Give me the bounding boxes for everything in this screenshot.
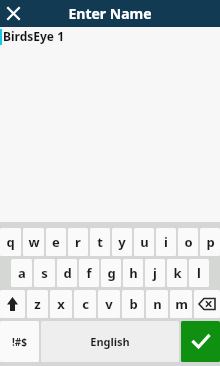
- staticText: w: [28, 233, 40, 251]
- staticText: a: [18, 264, 26, 282]
- staticText: p: [206, 233, 215, 251]
- button[interactable]: n: [146, 290, 168, 318]
- staticText: j: [153, 264, 157, 282]
- button[interactable]: p: [200, 228, 220, 256]
- staticText: k: [173, 264, 182, 282]
- button[interactable]: x: [50, 290, 72, 318]
- button[interactable]: l: [189, 259, 209, 287]
- button[interactable]: u: [134, 228, 154, 256]
- staticText: x: [57, 295, 65, 313]
- staticText: BirdsEye 1: [3, 28, 65, 44]
- button[interactable]: c: [74, 290, 96, 318]
- staticText: f: [86, 264, 92, 282]
- staticText: q: [6, 233, 15, 251]
- button[interactable]: Shift: [0, 290, 25, 318]
- button[interactable]: h: [123, 259, 143, 287]
- button[interactable]: m: [170, 290, 192, 318]
- button[interactable]: e: [46, 228, 66, 256]
- button[interactable]: Backspace: [194, 290, 220, 318]
- button[interactable]: English: [41, 321, 179, 362]
- button[interactable]: b: [122, 290, 144, 318]
- button[interactable]: g: [101, 259, 121, 287]
- button[interactable]: !#$: [0, 321, 39, 362]
- button[interactable]: y: [112, 228, 132, 256]
- button[interactable]: r: [68, 228, 88, 256]
- button[interactable]: v: [98, 290, 120, 318]
- button[interactable]: w: [23, 228, 44, 256]
- button[interactable]: j: [145, 259, 165, 287]
- button[interactable]: f: [79, 259, 99, 287]
- button[interactable]: a: [11, 259, 32, 287]
- staticText: u: [140, 233, 149, 251]
- button[interactable]: k: [167, 259, 187, 287]
- staticText: r: [75, 233, 81, 251]
- button[interactable]: q: [0, 228, 21, 256]
- button[interactable]: z: [27, 290, 48, 318]
- staticText: i: [164, 233, 168, 251]
- staticText: n: [153, 295, 162, 313]
- staticText: o: [184, 233, 193, 251]
- button[interactable]: BirdsEye 1: [0, 27, 220, 45]
- button[interactable]: s: [34, 259, 55, 287]
- button[interactable]: Enter: [181, 321, 220, 362]
- staticText: z: [34, 295, 41, 313]
- staticText: c: [82, 295, 89, 313]
- button[interactable]: t: [90, 228, 110, 256]
- staticText: d: [63, 264, 72, 282]
- button[interactable]: d: [57, 259, 77, 287]
- staticText: e: [52, 233, 60, 251]
- staticText: y: [118, 233, 126, 251]
- staticText: !#$: [12, 335, 27, 349]
- staticText: g: [107, 264, 116, 282]
- staticText: m: [175, 295, 188, 313]
- staticText: h: [129, 264, 138, 282]
- staticText: Enter Name: [68, 4, 152, 23]
- staticText: English: [90, 334, 130, 349]
- staticText: b: [129, 295, 138, 313]
- staticText: s: [41, 264, 48, 282]
- staticText: l: [197, 264, 201, 282]
- staticText: t: [97, 233, 103, 251]
- button[interactable]: Close: [0, 0, 27, 27]
- button[interactable]: o: [178, 228, 198, 256]
- button[interactable]: i: [156, 228, 176, 256]
- staticText: v: [105, 295, 113, 313]
